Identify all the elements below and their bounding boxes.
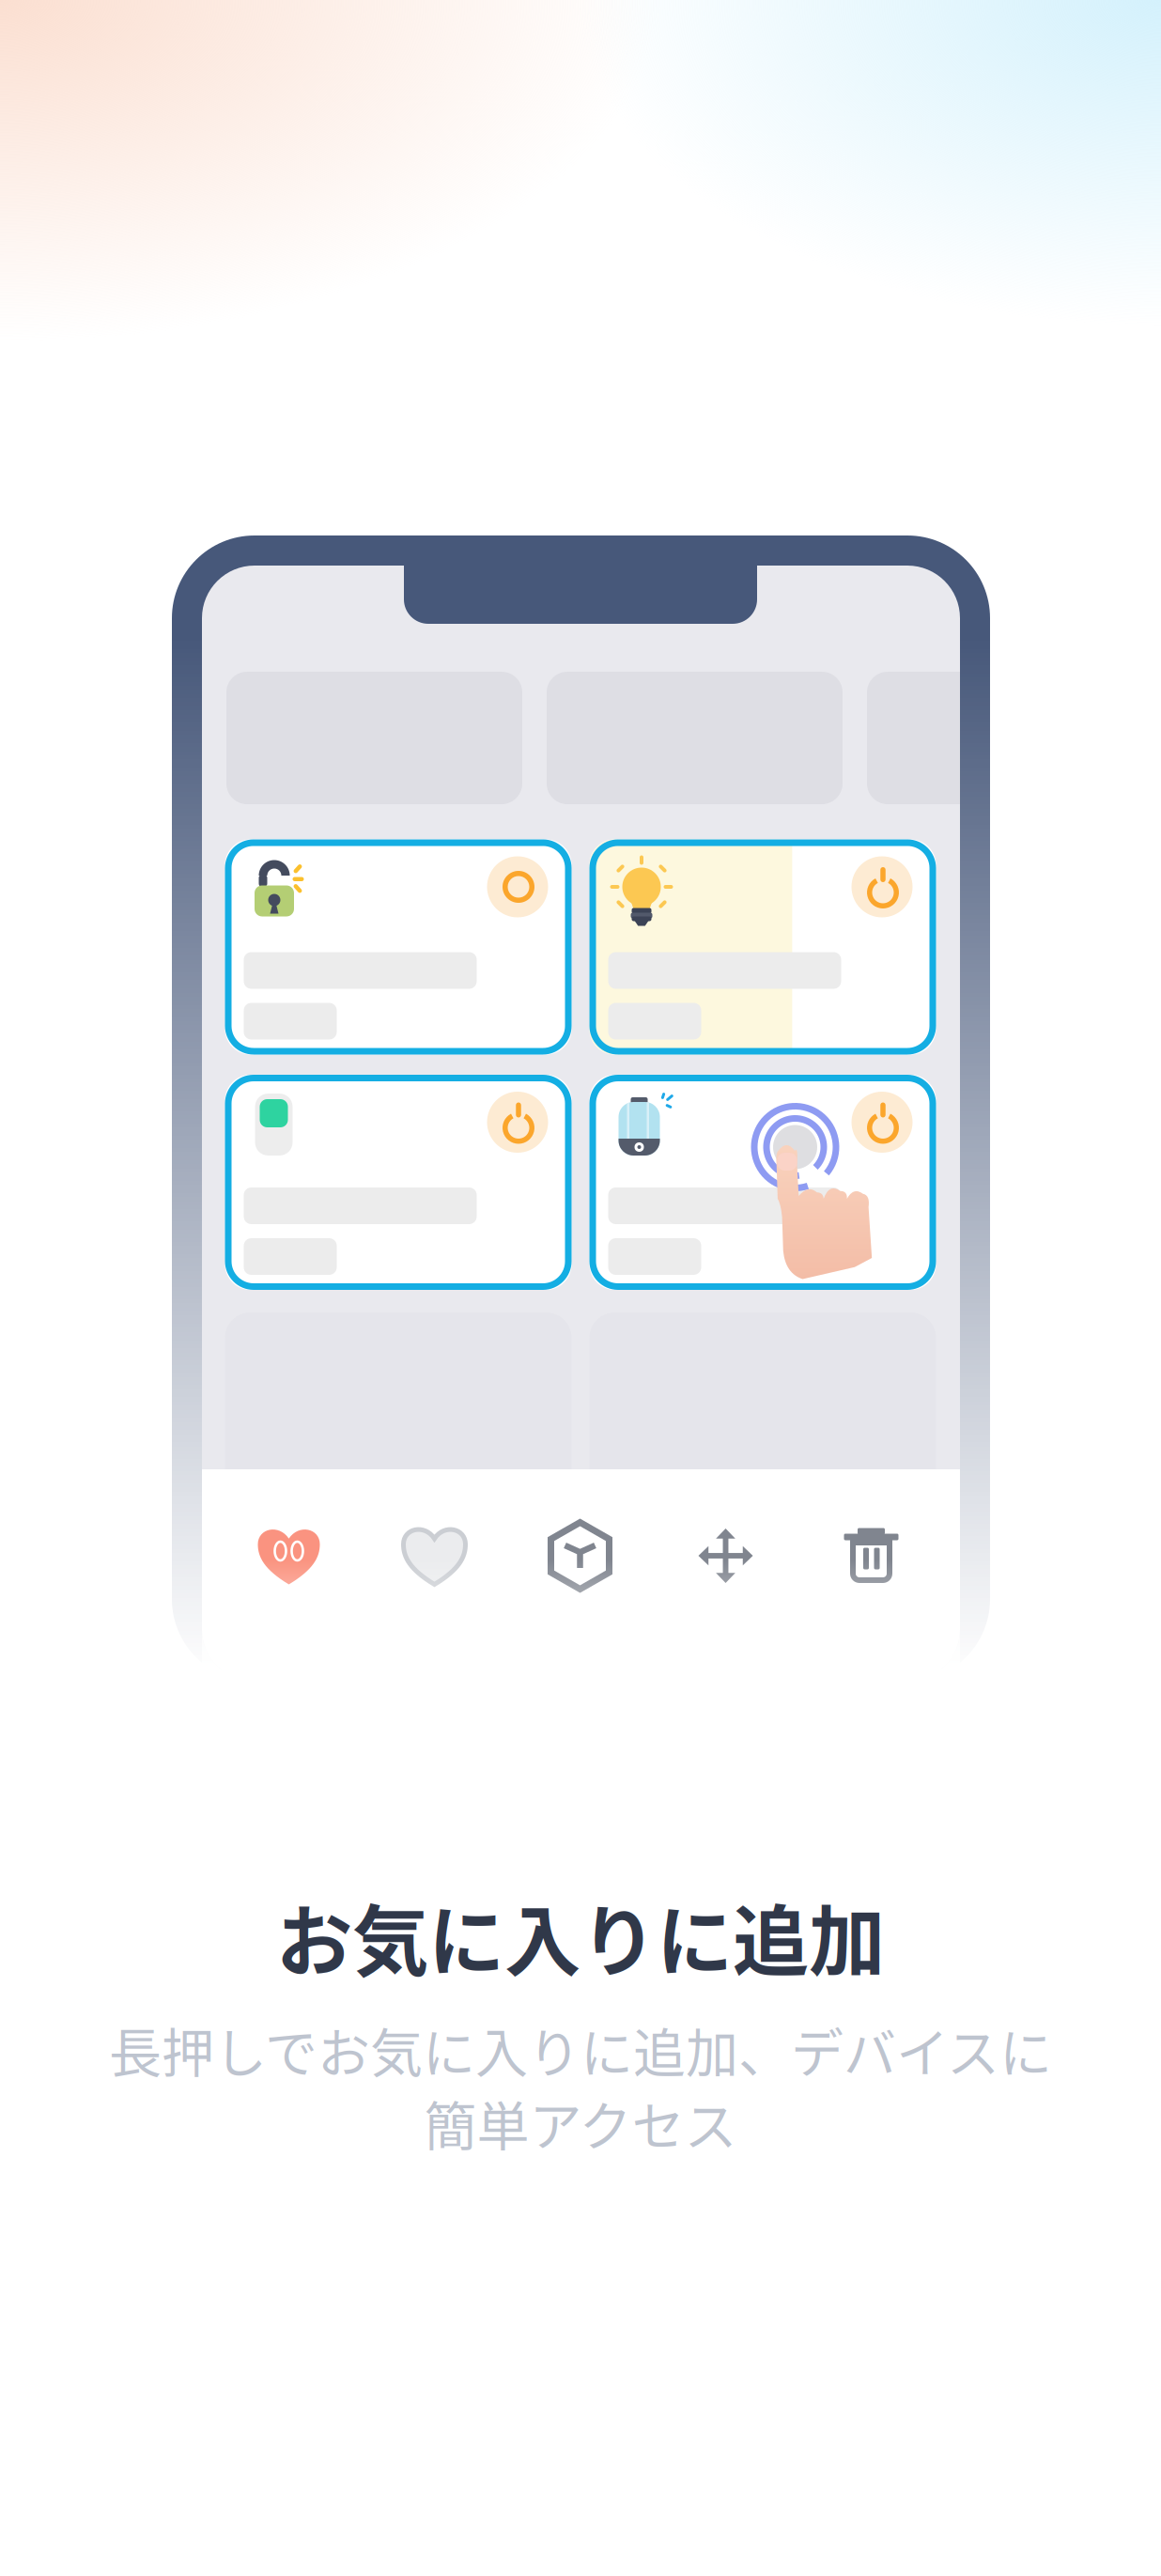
button[interactable]: [225, 839, 572, 1055]
staticText: 簡単アクセス: [424, 2085, 737, 2161]
staticText: 長押しでお気に入りに追加、デバイスに: [109, 2011, 1052, 2087]
button[interactable]: [589, 839, 936, 1055]
button[interactable]: Favourites: [216, 1507, 362, 1605]
button[interactable]: Delete: [798, 1507, 944, 1605]
button[interactable]: Move: [653, 1507, 798, 1605]
button[interactable]: [589, 1075, 936, 1290]
button[interactable]: [225, 1075, 572, 1290]
button[interactable]: Group: [507, 1507, 653, 1605]
staticText: お気に入りに追加: [276, 1881, 885, 1991]
button[interactable]: Add to favourites: [362, 1507, 507, 1605]
